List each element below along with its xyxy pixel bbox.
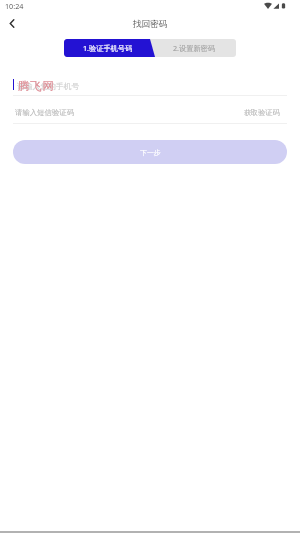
staticText: 请输入短信验证码 <box>15 108 75 117</box>
staticText: 请输入您的手机号 <box>17 81 80 91</box>
button[interactable]: SMS verification code input <box>13 101 235 123</box>
staticText: 1.验证手机号码 <box>83 43 133 53</box>
button[interactable]: 下一步 <box>13 140 287 164</box>
button[interactable]: 2.设置新密码 <box>152 39 236 57</box>
button[interactable]: 获取验证码 <box>240 103 284 121</box>
staticText: 10:24 <box>5 1 24 11</box>
button[interactable]: Phone number input <box>13 73 287 96</box>
button[interactable]: 1.验证手机号码 <box>64 39 152 57</box>
staticText: 找回密码 <box>133 19 168 30</box>
staticText: 获取验证码 <box>244 108 280 117</box>
staticText: 2.设置新密码 <box>173 43 215 53</box>
button[interactable]: Back <box>1 12 23 34</box>
staticText: 腾飞网 <box>18 79 55 94</box>
staticText: 下一步 <box>140 148 161 157</box>
